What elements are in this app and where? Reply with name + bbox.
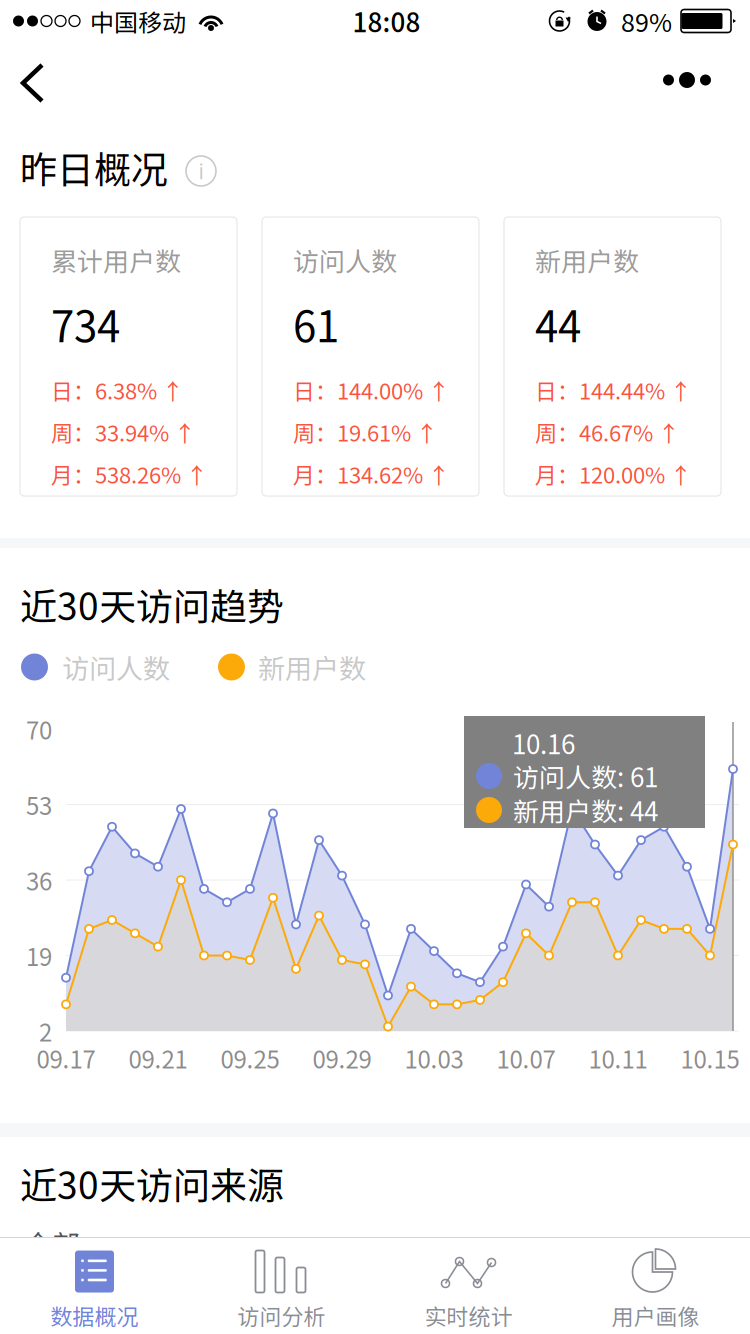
staticText: 访问人数 xyxy=(62,647,170,687)
staticText: 10.03 xyxy=(404,1041,463,1075)
staticText: 2 xyxy=(39,1014,52,1048)
staticText: 用户画像 xyxy=(611,1300,699,1331)
staticText: 61 xyxy=(293,294,339,354)
staticText: 日：6.38% ↑ xyxy=(51,374,184,406)
staticText: 昨日概况 xyxy=(20,140,168,194)
staticText: 09.25 xyxy=(220,1041,279,1075)
button[interactable]: 实时统计 xyxy=(375,1237,562,1334)
staticText: 访问人数: 61 xyxy=(513,757,658,795)
staticText: 36 xyxy=(26,863,52,897)
staticText: 89% xyxy=(621,3,672,39)
staticText: 09.29 xyxy=(312,1041,371,1075)
staticText: 09.17 xyxy=(36,1041,95,1075)
staticText: 访问人数 xyxy=(293,241,397,279)
staticText: i xyxy=(198,157,203,185)
staticText: 10.16 xyxy=(512,724,575,762)
staticText: 周：46.67% ↑ xyxy=(535,416,680,448)
button[interactable]: Info xyxy=(186,152,216,182)
staticText: 中国移动 xyxy=(90,4,186,38)
button[interactable]: More options xyxy=(642,42,732,118)
staticText: 10.11 xyxy=(588,1041,647,1075)
staticText: 新用户数: 44 xyxy=(513,791,658,829)
staticText: 新用户数 xyxy=(535,241,639,279)
staticText: 月：134.62% ↑ xyxy=(293,458,450,490)
staticText: 09.21 xyxy=(128,1041,187,1075)
button[interactable]: 访问分析 xyxy=(188,1237,375,1334)
staticText: 累计用户数 xyxy=(51,241,181,279)
staticText: 周：33.94% ↑ xyxy=(51,416,196,448)
staticText: 10.07 xyxy=(496,1041,555,1075)
staticText: 近30天访问趋势 xyxy=(20,577,284,631)
staticText: 19 xyxy=(26,938,52,973)
staticText: 44 xyxy=(535,294,581,354)
staticText: 周：19.61% ↑ xyxy=(293,416,438,448)
button[interactable]: 数据概况 xyxy=(1,1237,188,1334)
staticText: 日：144.44% ↑ xyxy=(535,374,692,406)
staticText: 新用户数 xyxy=(258,647,366,687)
staticText: 10.15 xyxy=(680,1041,739,1075)
staticText: 日：144.00% ↑ xyxy=(293,374,450,406)
staticText: 734 xyxy=(51,294,120,354)
button[interactable]: 用户画像 xyxy=(562,1237,749,1334)
staticText: 近30天访问来源 xyxy=(20,1156,284,1210)
staticText: 实时统计 xyxy=(424,1300,512,1331)
staticText: 53 xyxy=(26,787,52,822)
staticText: 全部 xyxy=(24,1223,80,1263)
staticText: 月：538.26% ↑ xyxy=(51,458,208,490)
staticText: 访问分析 xyxy=(237,1300,325,1331)
staticText: 月：120.00% ↑ xyxy=(535,458,692,490)
button[interactable]: Back xyxy=(0,42,76,118)
staticText: 18:08 xyxy=(352,2,420,40)
staticText: 70 xyxy=(26,712,52,746)
staticText: 数据概况 xyxy=(50,1300,138,1331)
